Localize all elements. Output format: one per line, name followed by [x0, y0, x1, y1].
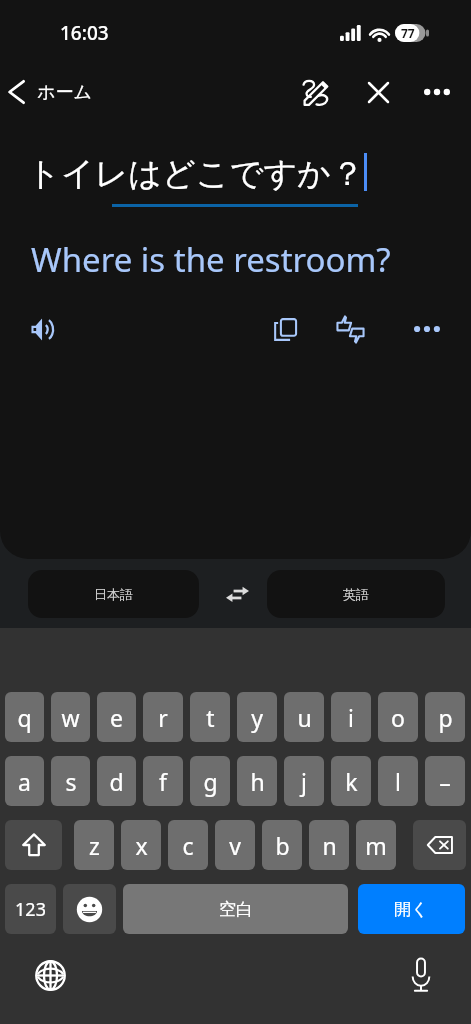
button[interactable]: g [190, 756, 230, 806]
button[interactable]: w [51, 692, 90, 742]
button[interactable]: – [425, 756, 465, 806]
staticText: c [182, 830, 194, 861]
button[interactable]: p [425, 692, 465, 742]
staticText: e [110, 702, 123, 733]
button[interactable]: l [378, 756, 418, 806]
staticText: v [229, 830, 241, 861]
staticText: d [109, 766, 124, 797]
staticText: z [89, 830, 100, 861]
button[interactable]: Backspace [413, 820, 466, 870]
button[interactable]: Rate translation [328, 307, 372, 351]
button[interactable]: n [309, 820, 349, 870]
button[interactable]: More options [415, 70, 459, 114]
button[interactable]: Voice input [399, 953, 443, 997]
button[interactable]: 空白 [123, 884, 348, 934]
button[interactable]: More [405, 307, 449, 351]
button[interactable]: u [284, 692, 324, 742]
staticText: b [275, 830, 290, 861]
staticText: p [438, 702, 453, 733]
staticText: 日本語 [94, 586, 133, 602]
button[interactable]: Handwriting input [294, 70, 338, 114]
staticText: 16:03 [60, 20, 109, 46]
staticText: x [135, 830, 148, 861]
button[interactable]: ホーム [0, 79, 100, 105]
button[interactable]: s [51, 756, 90, 806]
button[interactable]: e [97, 692, 136, 742]
button[interactable]: t [190, 692, 230, 742]
button[interactable]: j [284, 756, 324, 806]
button[interactable]: v [215, 820, 255, 870]
staticText: l [395, 766, 401, 797]
button[interactable]: Emoji [63, 884, 116, 934]
staticText: r [158, 702, 168, 733]
staticText: 77 [401, 25, 415, 41]
staticText: y [251, 702, 263, 733]
staticText: f [159, 766, 167, 797]
staticText: i [348, 702, 354, 733]
button[interactable]: f [143, 756, 183, 806]
button[interactable]: q [5, 692, 44, 742]
staticText: u [297, 702, 312, 733]
staticText: j [301, 766, 307, 797]
button[interactable]: h [237, 756, 277, 806]
button[interactable]: 英語 [267, 570, 445, 618]
staticText: 英語 [343, 586, 369, 602]
button[interactable]: k [331, 756, 371, 806]
staticText: a [18, 766, 31, 797]
staticText: t [206, 702, 215, 733]
staticText: 開く [394, 899, 429, 920]
staticText: 空白 [219, 899, 253, 920]
staticText: s [65, 766, 77, 797]
staticText: ホーム [37, 81, 92, 104]
button[interactable]: Change keyboard language [28, 953, 72, 997]
button[interactable]: o [378, 692, 418, 742]
button[interactable]: d [97, 756, 136, 806]
staticText: w [61, 702, 80, 733]
button[interactable]: m [356, 820, 396, 870]
button[interactable]: Listen [20, 307, 64, 351]
staticText: q [17, 702, 32, 733]
button[interactable]: z [74, 820, 114, 870]
staticText: n [322, 830, 337, 861]
button[interactable]: y [237, 692, 277, 742]
button[interactable]: Close [356, 70, 400, 114]
button[interactable]: 日本語 [28, 570, 199, 618]
staticText: 123 [15, 897, 46, 922]
staticText: トイレはどこですか？ [27, 153, 364, 195]
staticText: Where is the restroom? [31, 237, 391, 282]
button[interactable]: 123 [5, 884, 56, 934]
button[interactable]: c [168, 820, 208, 870]
button[interactable]: Copy [263, 307, 307, 351]
button[interactable]: Shift [5, 820, 62, 870]
button[interactable]: 開く [358, 884, 465, 934]
staticText: o [391, 702, 405, 733]
staticText: m [365, 830, 387, 861]
button[interactable]: b [262, 820, 302, 870]
button[interactable]: i [331, 692, 371, 742]
button[interactable]: r [143, 692, 183, 742]
button[interactable]: x [121, 820, 161, 870]
staticText: h [250, 766, 265, 797]
button[interactable]: Swap languages [208, 570, 267, 618]
staticText: k [345, 766, 358, 797]
staticText: – [439, 766, 451, 797]
staticText: g [203, 766, 218, 797]
button[interactable]: a [5, 756, 44, 806]
